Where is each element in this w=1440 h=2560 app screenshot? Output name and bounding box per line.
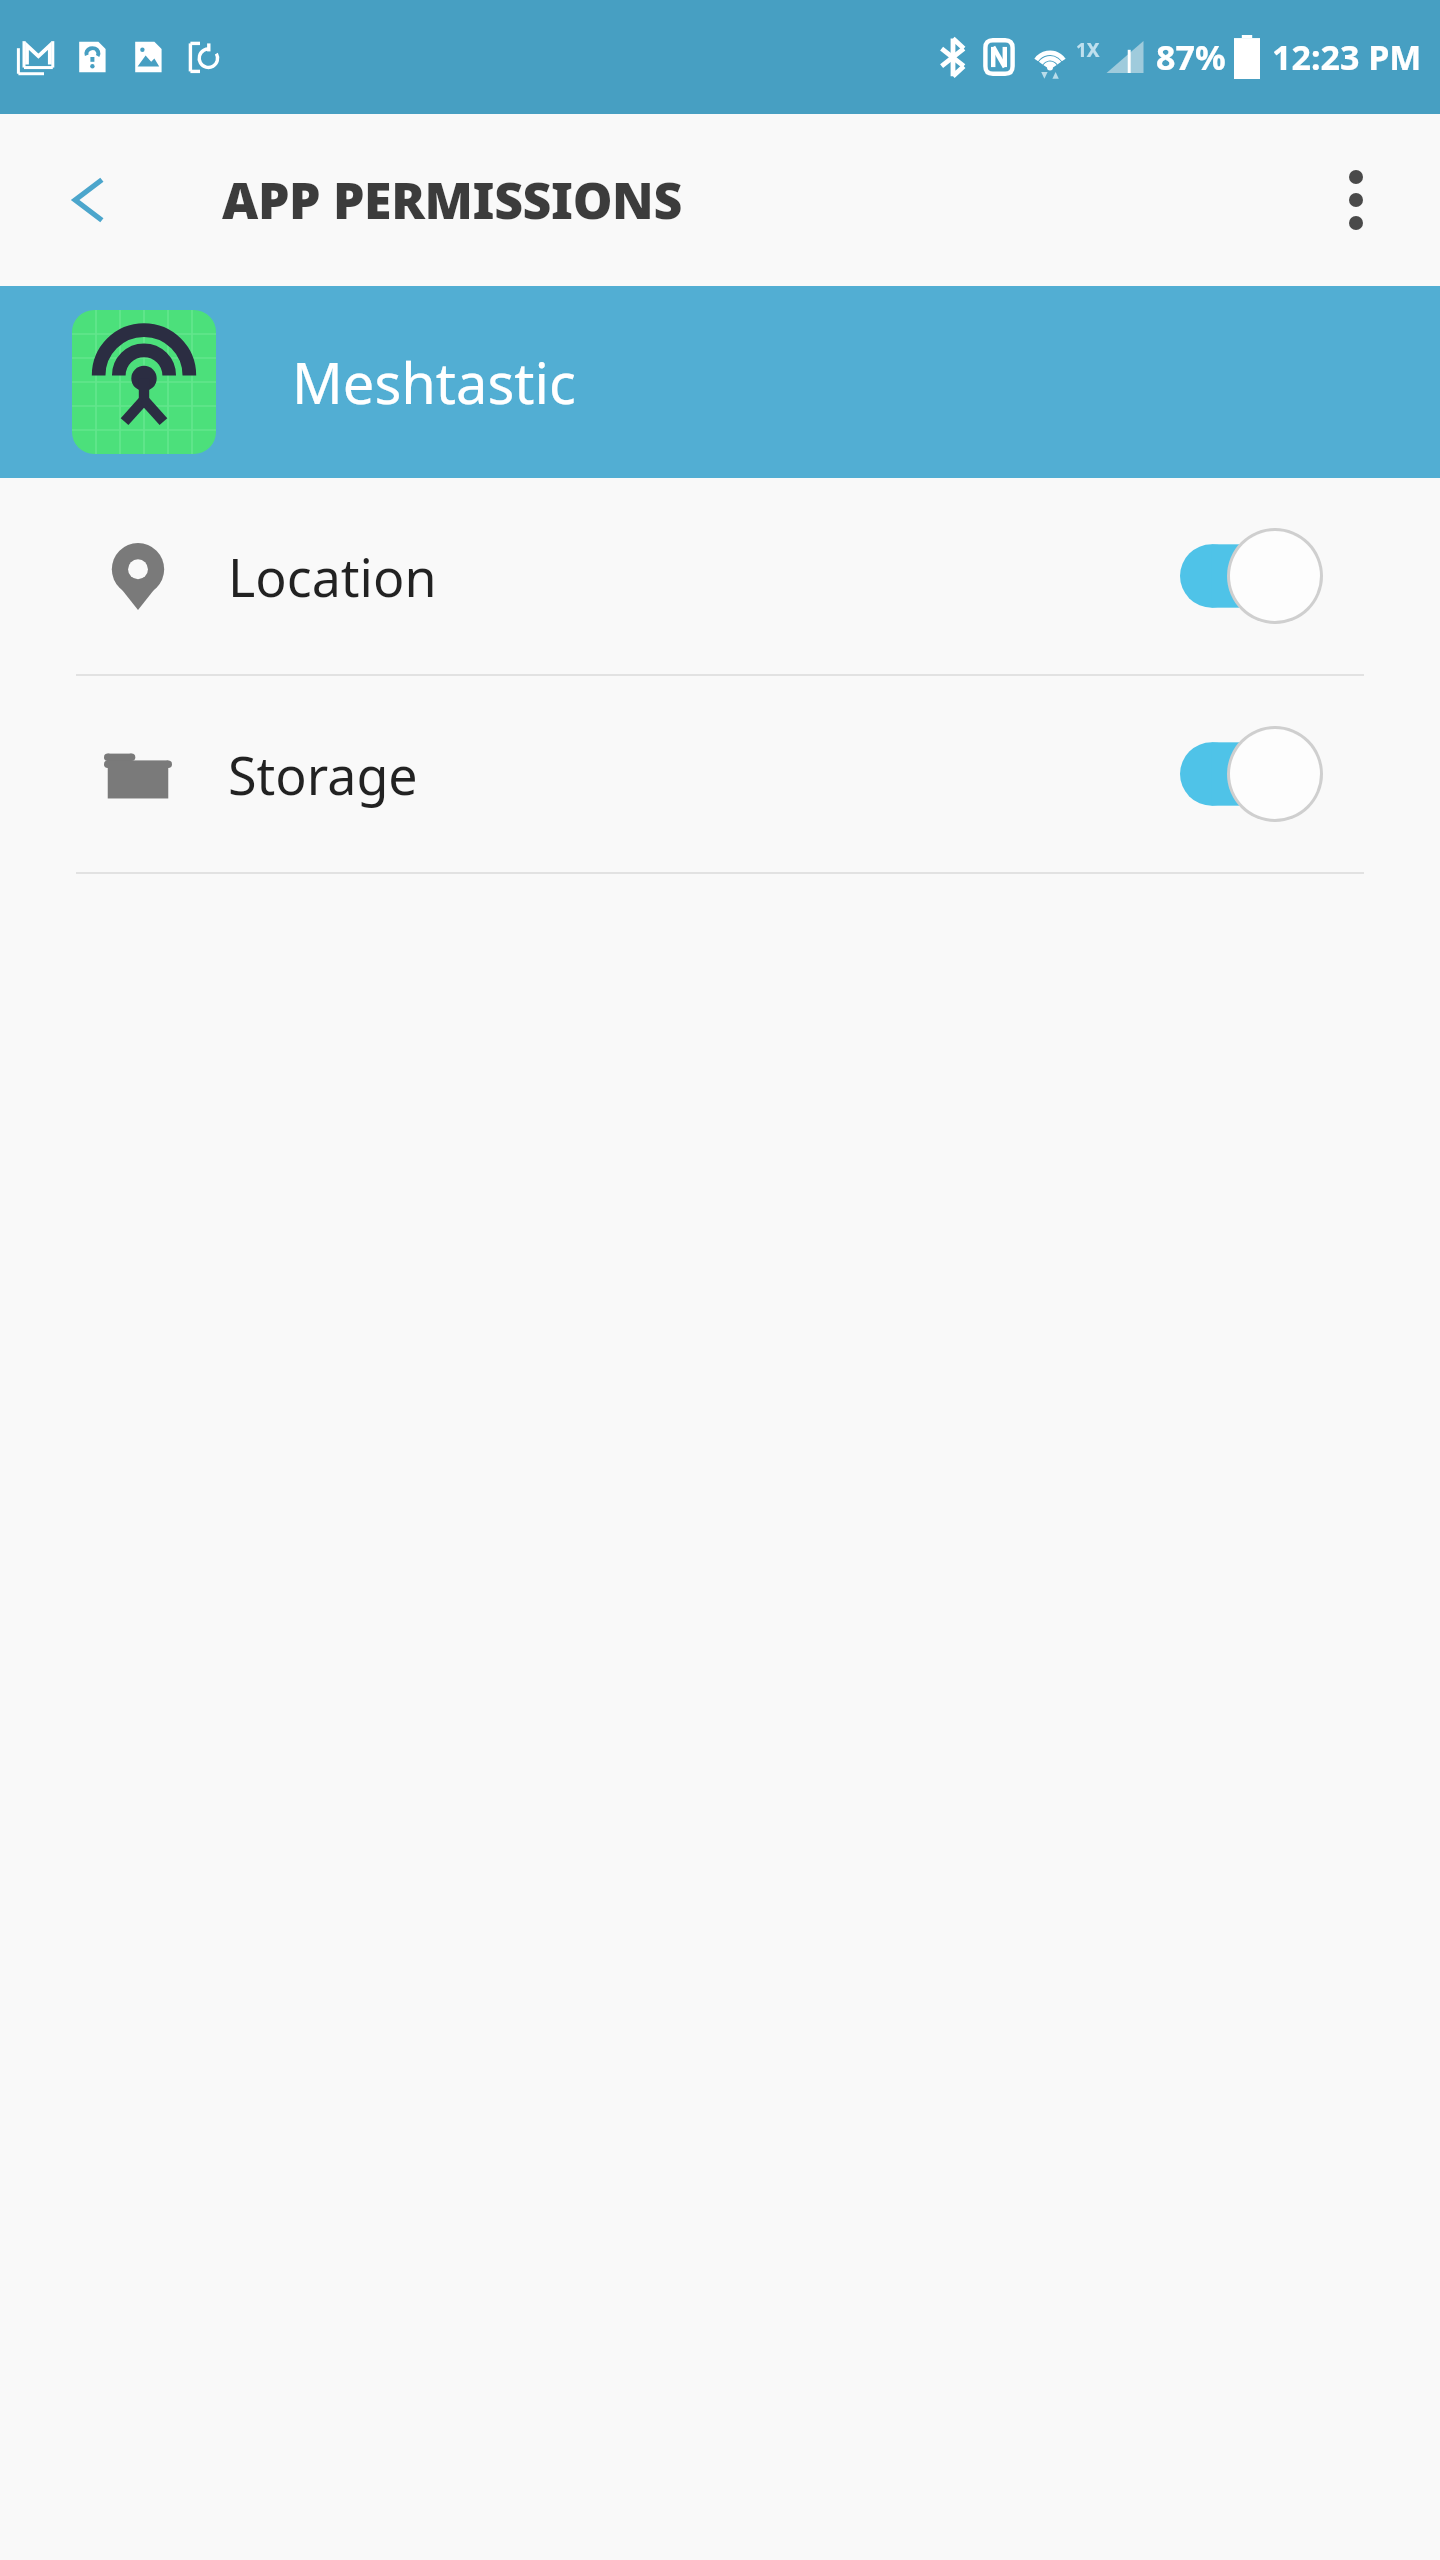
- staticText: 1X: [1076, 37, 1100, 63]
- staticText: 87%: [1156, 34, 1226, 80]
- button[interactable]: Meshtastic: [0, 286, 1440, 478]
- button[interactable]: Storage: [0, 676, 1440, 872]
- button[interactable]: Toggle permission: [1180, 726, 1330, 822]
- staticText: Storage: [228, 739, 418, 810]
- button[interactable]: Back: [46, 157, 132, 243]
- staticText: APP PERMISSIONS: [222, 166, 682, 234]
- staticText: Location: [228, 541, 437, 612]
- button[interactable]: Toggle permission: [1180, 528, 1330, 624]
- button[interactable]: More options: [1314, 158, 1398, 242]
- staticText: 12:23 PM: [1272, 34, 1422, 80]
- staticText: Meshtastic: [292, 344, 576, 420]
- button[interactable]: Location: [0, 478, 1440, 674]
